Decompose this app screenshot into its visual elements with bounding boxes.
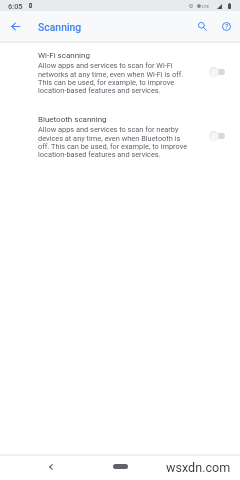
- staticText: Scanning: [38, 21, 82, 33]
- button[interactable]: Bluetooth scanning: [0, 115, 240, 158]
- button[interactable]: Toggle: [209, 127, 225, 145]
- button[interactable]: Help: [215, 15, 237, 37]
- button[interactable]: Search: [191, 15, 213, 37]
- button[interactable]: Back: [45, 461, 57, 473]
- button[interactable]: Wi-Fi scanning: [0, 51, 240, 94]
- staticText: Wi-Fi scanning: [38, 51, 90, 60]
- staticText: LTE: [202, 4, 209, 9]
- staticText: Allow apps and services to scan for near…: [38, 125, 188, 158]
- staticText: 6:05: [8, 2, 23, 11]
- staticText: ?: [225, 22, 229, 31]
- staticText: Bluetooth scanning: [38, 115, 107, 124]
- staticText: wsxdn.com: [166, 460, 231, 475]
- button[interactable]: Back: [4, 15, 26, 37]
- staticText: Allow apps and services to scan for Wi-F…: [38, 61, 188, 94]
- button[interactable]: Toggle: [209, 63, 225, 81]
- button[interactable]: Home: [113, 464, 128, 469]
